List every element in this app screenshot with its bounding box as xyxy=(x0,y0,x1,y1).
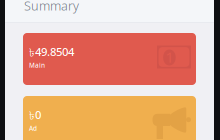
staticText: Main xyxy=(29,61,45,70)
staticText: ৳49.8504 xyxy=(29,44,74,61)
button[interactable]: 1 xyxy=(23,33,196,85)
staticText: Ad xyxy=(29,124,37,133)
staticText: 1 xyxy=(165,47,173,67)
staticText: ৳0 xyxy=(29,107,41,124)
staticText: Summary xyxy=(24,0,79,14)
button[interactable]: ৳0 xyxy=(23,96,196,140)
